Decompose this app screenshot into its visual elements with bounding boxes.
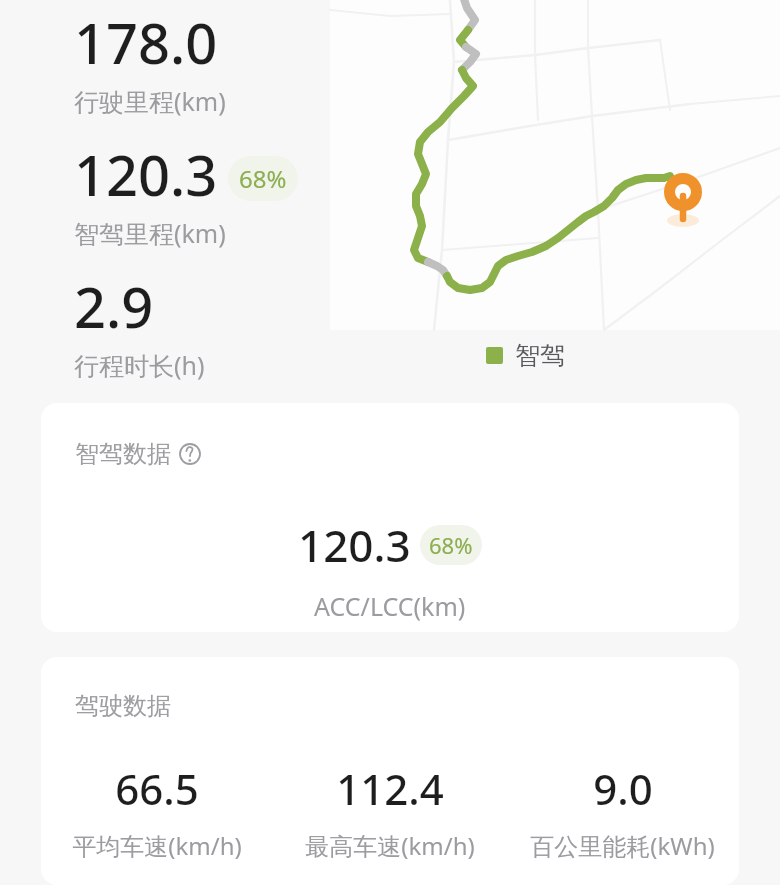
button[interactable]: 智驾数据 bbox=[41, 403, 739, 632]
staticText: 68% bbox=[239, 162, 287, 195]
staticText: 120.3 bbox=[298, 515, 411, 575]
button[interactable]: 9.0 bbox=[506, 760, 739, 862]
button[interactable]: 120.3 bbox=[74, 136, 298, 250]
staticText: ACC/LCC(km) bbox=[314, 589, 466, 623]
staticText: 9.0 bbox=[593, 760, 653, 817]
button[interactable]: 112.4 bbox=[273, 760, 506, 862]
button[interactable]: 智驾数据 bbox=[75, 439, 201, 469]
button[interactable]: Trip route map bbox=[330, 0, 780, 330]
staticText: 112.4 bbox=[336, 760, 444, 817]
staticText: 平均车速(km/h) bbox=[72, 829, 242, 862]
staticText: 智驾 bbox=[515, 340, 565, 371]
button[interactable]: 66.5 bbox=[41, 760, 273, 862]
button[interactable]: 驾驶数据 bbox=[41, 657, 739, 885]
staticText: 最高车速(km/h) bbox=[305, 829, 475, 862]
staticText: 68% bbox=[429, 530, 473, 560]
staticText: 智驾数据 bbox=[75, 439, 171, 469]
button[interactable]: 178.0 bbox=[74, 4, 226, 118]
staticText: 120.3 bbox=[74, 136, 218, 212]
button[interactable]: 智驾 bbox=[486, 340, 565, 371]
staticText: 行程时长(h) bbox=[74, 348, 205, 382]
staticText: 行驶里程(km) bbox=[74, 84, 226, 118]
staticText: 百公里能耗(kWh) bbox=[530, 829, 715, 862]
staticText: 66.5 bbox=[115, 760, 199, 817]
staticText: 智驾里程(km) bbox=[74, 216, 226, 250]
button[interactable]: 驾驶数据 bbox=[75, 691, 171, 721]
staticText: 178.0 bbox=[74, 4, 218, 80]
staticText: 2.9 bbox=[74, 268, 154, 344]
staticText: 驾驶数据 bbox=[75, 691, 171, 721]
button[interactable]: 2.9 bbox=[74, 268, 205, 382]
